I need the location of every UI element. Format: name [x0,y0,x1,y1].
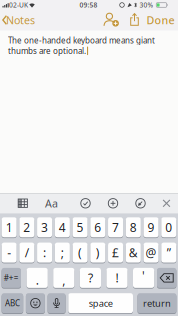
button[interactable] [103,12,119,28]
button[interactable]: - [2,243,17,263]
button[interactable] [134,197,146,209]
button[interactable]: 0 [161,217,176,237]
staticText: 02-UK [9,1,28,9]
staticText: 8 [130,219,137,235]
staticText: 1 [6,219,13,235]
staticText: @ [145,245,156,260]
button[interactable]: 9 [143,217,159,237]
staticText: thumbs are optional. [8,45,86,56]
staticText: space [89,297,113,309]
button[interactable]: 2 [19,217,34,237]
button[interactable]: Done [145,13,175,27]
button[interactable]: / [19,243,34,263]
staticText: 2 [23,219,30,235]
button[interactable]: ; [55,243,70,263]
staticText: ! [115,270,118,286]
button[interactable]: : [37,243,52,263]
button[interactable] [26,293,45,313]
button[interactable]: ) [90,243,105,263]
button[interactable]: 1 [2,217,17,237]
staticText: . [36,272,39,288]
staticText: Done [146,13,174,27]
button[interactable]: return [137,293,176,313]
button[interactable] [17,198,28,208]
staticText: ) [96,245,100,260]
staticText: £ [112,245,119,260]
staticText: Notes [6,13,35,27]
staticText: ” [167,245,171,260]
staticText: 6 [94,219,101,235]
staticText: 4 [59,219,66,235]
button[interactable]: ( [73,243,88,263]
button[interactable]: 8 [126,217,141,237]
button[interactable]: . [27,268,48,288]
button[interactable] [130,13,139,26]
button[interactable]: Notes [2,13,36,26]
button[interactable] [107,197,119,209]
button[interactable]: , [53,268,74,288]
button[interactable]: ' [133,268,154,288]
staticText: / [25,245,29,260]
staticText: ABC [5,298,20,308]
staticText: ' [142,267,145,283]
staticText: Aa [45,196,58,210]
button[interactable]: 7 [108,217,123,237]
button[interactable]: @ [143,243,159,263]
button[interactable]: £ [108,243,123,263]
staticText: 5 [77,219,84,235]
staticText: ; [61,245,64,260]
staticText: ( [78,245,82,260]
staticText: 30% [139,1,153,9]
button[interactable]: Aa [44,197,58,209]
staticText: & [129,245,138,260]
staticText: : [43,245,46,260]
button[interactable]: 6 [90,217,105,237]
staticText: - [7,245,11,260]
button[interactable] [48,293,66,313]
staticText: The one-handed keyboard means giant [8,35,155,46]
button[interactable]: & [126,243,141,263]
button[interactable]: 4 [55,217,70,237]
staticText: 3 [41,219,48,235]
staticText: 09:58 [79,1,97,9]
staticText: #+= [4,273,19,283]
button[interactable]: ! [106,268,128,288]
button[interactable]: #+= [2,268,21,288]
button[interactable]: ” [161,243,176,263]
button[interactable] [162,199,171,208]
staticText: , [62,272,65,288]
button[interactable] [79,197,91,209]
button[interactable]: 5 [73,217,88,237]
button[interactable] [157,268,176,288]
button[interactable]: ? [80,268,101,288]
button[interactable]: space [68,293,133,313]
staticText: return [143,297,171,309]
button[interactable]: ABC [2,293,23,313]
staticText: 0 [165,219,172,235]
staticText: 9 [147,219,154,235]
staticText: 7 [112,219,119,235]
button[interactable]: 3 [37,217,52,237]
staticText: ? [88,270,93,286]
